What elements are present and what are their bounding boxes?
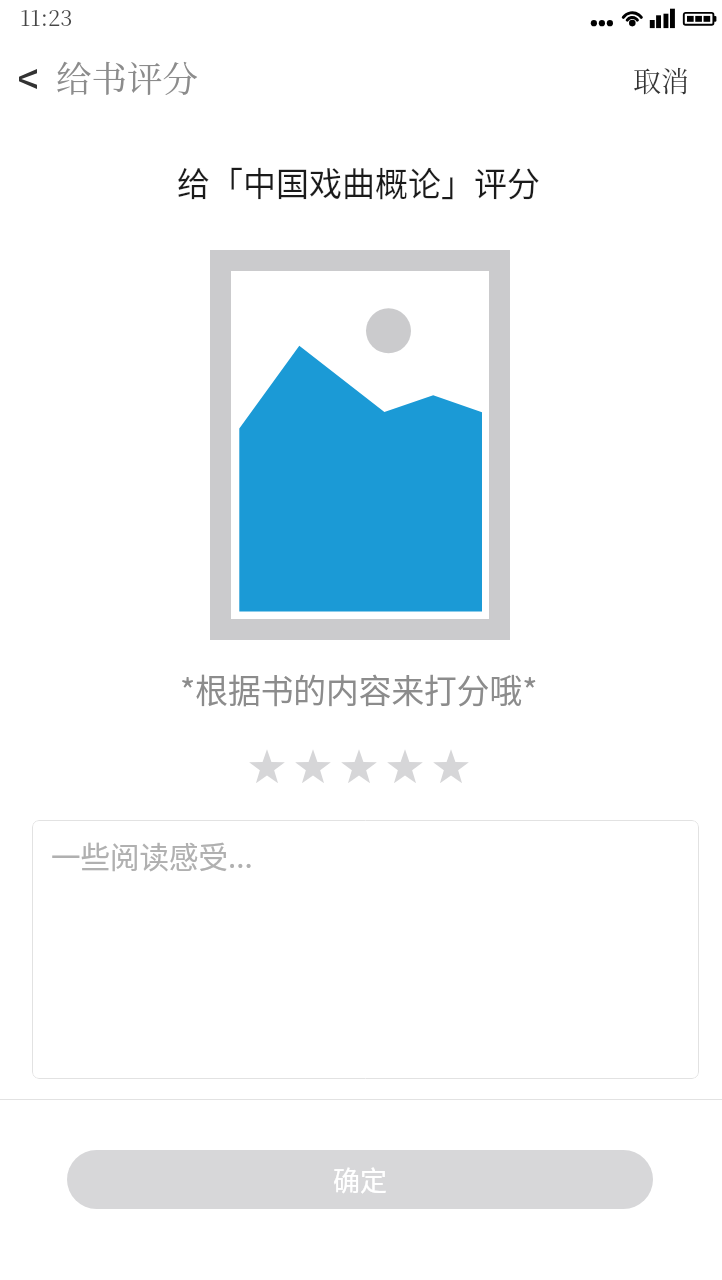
button[interactable]: 确定 <box>67 1150 653 1209</box>
button[interactable]: 取消 <box>611 52 722 108</box>
button[interactable]: Rate 1 stars <box>244 744 290 790</box>
button[interactable]: Back <box>0 48 217 104</box>
button[interactable]: Rate 5 stars <box>428 744 474 790</box>
staticText: 给「中国戏曲概论」评分 <box>177 158 540 206</box>
staticText: 一些阅读感受... <box>51 834 253 877</box>
staticText: 11:23 <box>20 1 73 33</box>
staticText: 确定 <box>333 1160 387 1199</box>
staticText: 给书评分 <box>56 51 199 102</box>
other: Back <box>19 69 37 89</box>
staticText: 取消 <box>633 60 690 100</box>
button[interactable]: Rate 4 stars <box>382 744 428 790</box>
button[interactable]: Rate 2 stars <box>290 744 336 790</box>
button[interactable]: 一些阅读感受... <box>32 820 699 1079</box>
button[interactable]: Rate 3 stars <box>336 744 382 790</box>
staticText: *根据书的内容来打分哦* <box>180 665 538 712</box>
